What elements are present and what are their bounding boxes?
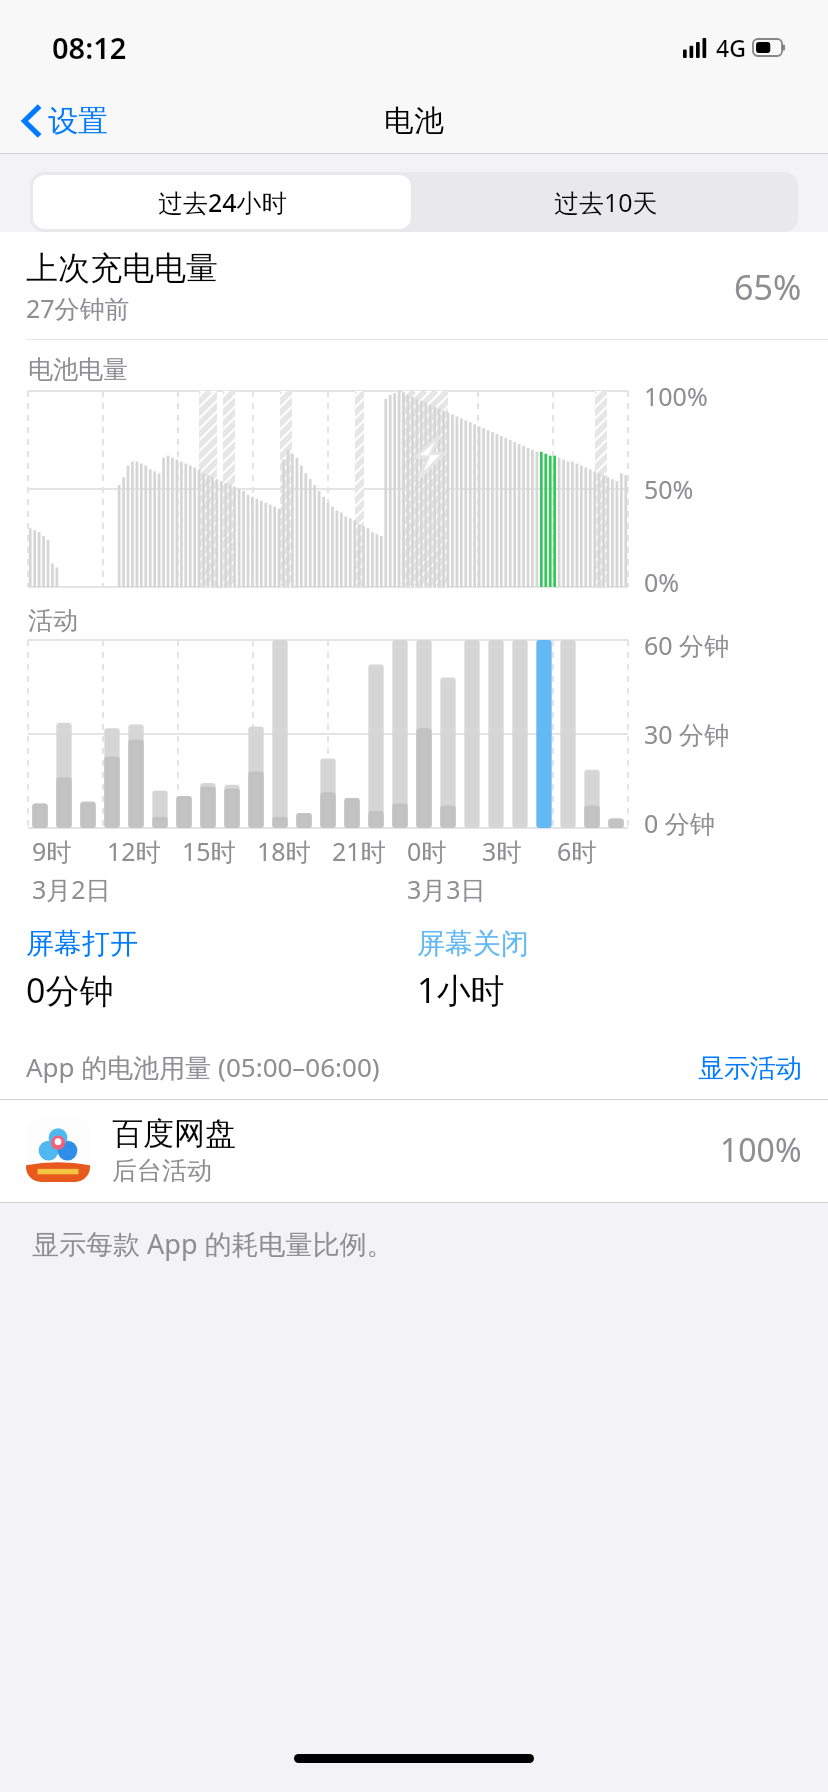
staticText: 100% — [720, 1128, 802, 1172]
staticText: 4G — [716, 32, 746, 63]
staticText: 电池 — [384, 102, 444, 140]
staticText: 电池电量 — [28, 354, 128, 385]
staticText: 0时 — [407, 834, 447, 868]
button[interactable]: 显示活动 — [698, 1052, 802, 1085]
button[interactable]: 过去10天 — [414, 172, 798, 232]
staticText: 08:12 — [52, 28, 127, 67]
button[interactable]: 过去24小时 — [33, 175, 411, 229]
staticText: 3时 — [482, 834, 522, 868]
staticText: 百度网盘 — [112, 1114, 236, 1153]
staticText: 100% — [644, 379, 708, 413]
staticText: 1小时 — [417, 967, 505, 1013]
staticText: App 的电池用量 (05:00–06:00) — [26, 1049, 698, 1085]
button[interactable]: 百度网盘 — [0, 1100, 828, 1202]
staticText: 后台活动 — [112, 1155, 212, 1186]
staticText: 屏幕打开 — [26, 926, 138, 961]
button[interactable]: 设置 — [0, 96, 122, 146]
staticText: 65% — [734, 264, 802, 310]
staticText: 过去10天 — [554, 185, 658, 219]
staticText: 21时 — [332, 834, 386, 868]
staticText: 18时 — [257, 834, 311, 868]
staticText: 15时 — [182, 834, 236, 868]
staticText: 30 分钟 — [644, 717, 730, 751]
staticText: 活动 — [28, 605, 78, 636]
button[interactable]: 屏幕关闭 — [417, 926, 828, 1013]
staticText: 0 分钟 — [644, 806, 715, 840]
staticText: 0% — [644, 565, 680, 599]
staticText: 12时 — [107, 834, 161, 868]
staticText: 3月3日 — [407, 872, 486, 906]
staticText: 显示活动 — [698, 1052, 802, 1085]
other: 百度网盘 — [26, 1118, 90, 1182]
staticText: 过去24小时 — [158, 185, 287, 219]
staticText: 9时 — [32, 834, 72, 868]
staticText: 50% — [644, 472, 694, 506]
staticText: 上次充电电量 — [26, 248, 218, 288]
staticText: 设置 — [48, 102, 108, 140]
staticText: 60 分钟 — [644, 628, 730, 662]
staticText: 3月2日 — [32, 872, 111, 906]
staticText: 27分钟前 — [26, 291, 130, 325]
button[interactable]: 屏幕打开 — [26, 926, 417, 1013]
staticText: 6时 — [557, 834, 597, 868]
staticText: 显示每款 App 的耗电量比例。 — [32, 1225, 394, 1262]
staticText: 0分钟 — [26, 967, 114, 1013]
staticText: 屏幕关闭 — [417, 926, 529, 961]
